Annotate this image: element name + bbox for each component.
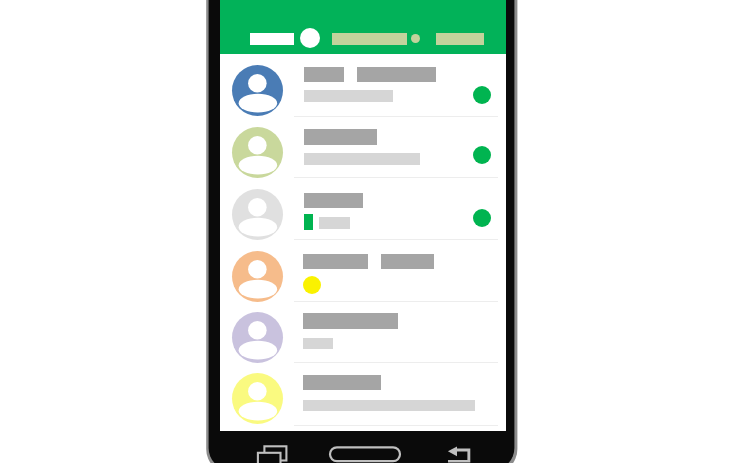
button[interactable]: Recent apps: [252, 441, 292, 463]
button[interactable]: Home: [328, 445, 402, 463]
button[interactable]: [220, 363, 506, 424]
button[interactable]: [220, 54, 506, 116]
button[interactable]: Profile photo: [300, 28, 320, 48]
button[interactable]: Back: [444, 443, 476, 463]
button[interactable]: More options: [411, 34, 420, 43]
button[interactable]: Unread message: [473, 86, 491, 104]
button[interactable]: [220, 302, 506, 363]
button[interactable]: Unread message: [473, 146, 491, 164]
button[interactable]: New message: [303, 276, 321, 294]
button[interactable]: Unread message: [473, 209, 491, 227]
button[interactable]: [220, 178, 506, 239]
button[interactable]: [220, 240, 506, 300]
button[interactable]: [220, 117, 506, 178]
